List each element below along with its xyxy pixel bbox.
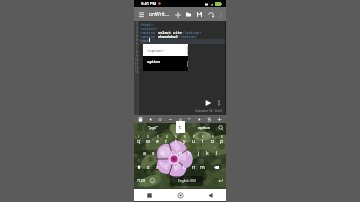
button[interactable]: 2	[143, 134, 152, 147]
staticText: f	[171, 150, 173, 157]
button[interactable]: x	[153, 161, 162, 173]
staticText: option	[198, 125, 211, 130]
staticText: <opt	[140, 38, 149, 42]
staticText: character 54 · Line1	[195, 109, 223, 113]
button[interactable]: n	[189, 161, 198, 173]
staticText: <option>	[147, 48, 164, 53]
staticText: z	[147, 164, 150, 171]
button[interactable]: z	[144, 161, 153, 173]
button[interactable]: Backspace	[207, 161, 226, 173]
button[interactable]: f	[167, 147, 176, 159]
button[interactable]: Home	[175, 190, 186, 201]
staticText: ?123	[137, 178, 145, 183]
button[interactable]: Quote	[186, 116, 193, 123]
staticText: 1	[136, 22, 138, 26]
staticText: 11	[135, 62, 139, 66]
button[interactable]: Open folder	[183, 9, 194, 20]
button[interactable]: 0	[217, 134, 226, 147]
staticText: 2	[147, 135, 149, 139]
button[interactable]: a	[140, 147, 149, 159]
button[interactable]: ?123	[134, 174, 147, 187]
button[interactable]: g	[176, 147, 185, 159]
button[interactable]: 6	[180, 134, 189, 147]
staticText: 5	[136, 38, 138, 42]
button[interactable]: t	[176, 121, 185, 133]
staticText: q	[137, 138, 141, 145]
button[interactable]: 5	[171, 134, 180, 147]
staticText: <option	[140, 30, 158, 34]
button[interactable]: Shift	[134, 161, 144, 173]
staticText: <select>	[140, 26, 158, 30]
button[interactable]: Search	[217, 124, 225, 132]
staticText: "pgt"	[148, 125, 158, 130]
staticText: m	[200, 164, 205, 171]
staticText: 10	[135, 58, 139, 62]
button[interactable]: s	[149, 147, 158, 159]
staticText: 5	[175, 135, 177, 139]
staticText: t	[179, 123, 182, 131]
button[interactable]: Back	[205, 190, 216, 201]
button[interactable]: 8	[198, 134, 207, 147]
button[interactable]: option	[143, 56, 188, 71]
staticText: 12	[135, 66, 139, 70]
button[interactable]: v	[171, 161, 180, 173]
staticText: option	[147, 59, 161, 64]
staticText: 2	[136, 26, 138, 30]
staticText: s	[152, 150, 155, 157]
staticText: c	[165, 164, 168, 171]
staticText: 1	[138, 135, 140, 139]
staticText: b	[183, 164, 187, 171]
button[interactable]: Previous	[147, 116, 154, 123]
button[interactable]: English (US)	[170, 176, 203, 186]
button[interactable]: h	[185, 147, 194, 159]
button[interactable]: Tag	[157, 116, 164, 123]
staticText: 3	[157, 135, 159, 139]
staticText: w	[146, 138, 150, 145]
button[interactable]: Add	[172, 9, 183, 20]
button[interactable]: option	[196, 125, 213, 130]
staticText: </option>	[182, 30, 202, 34]
button[interactable]: Menu	[136, 9, 146, 19]
button[interactable]: "pgt"	[146, 125, 160, 130]
button[interactable]: Enter	[214, 174, 226, 187]
staticText: v	[174, 164, 177, 171]
button[interactable]: j	[194, 147, 203, 159]
button[interactable]: Save	[194, 9, 205, 20]
button[interactable]: Move	[216, 116, 223, 123]
button[interactable]: c	[162, 161, 171, 173]
staticText: r	[165, 138, 168, 145]
button[interactable]: 7	[189, 134, 198, 147]
button[interactable]: b	[180, 161, 189, 173]
staticText: 7	[136, 46, 138, 50]
button[interactable]: Undo	[205, 9, 216, 20]
button[interactable]: 9	[208, 134, 217, 147]
button[interactable]: More	[214, 98, 224, 108]
staticText: 4	[136, 34, 138, 38]
staticText: 7	[193, 135, 195, 139]
staticText: 6	[136, 42, 138, 46]
button[interactable]: File	[137, 116, 144, 123]
button[interactable]: Emoji	[147, 174, 158, 187]
staticText: p	[220, 138, 224, 145]
button[interactable]: k	[203, 147, 212, 159]
button[interactable]: 3	[153, 134, 162, 147]
button[interactable]: Ampersand	[206, 116, 213, 123]
button[interactable]: l	[212, 147, 221, 159]
button[interactable]: Dash	[167, 116, 174, 123]
button[interactable]: Next	[196, 116, 203, 123]
button[interactable]: 4	[162, 134, 171, 147]
staticText: y	[183, 138, 186, 145]
staticText: o	[211, 138, 215, 145]
staticText: 9	[136, 54, 138, 58]
button[interactable]: More options	[216, 10, 225, 19]
staticText: e	[156, 138, 159, 145]
button[interactable]: <option>	[143, 44, 188, 56]
button[interactable]: m	[198, 161, 207, 173]
staticText: ahmedabad	[158, 34, 178, 38]
staticText: 0	[221, 135, 223, 139]
button[interactable]: Recents	[144, 190, 155, 201]
button[interactable]: d	[158, 147, 167, 159]
button[interactable]: Run	[202, 97, 214, 109]
button[interactable]: 1	[134, 134, 143, 147]
button[interactable]: Equals	[177, 116, 184, 123]
